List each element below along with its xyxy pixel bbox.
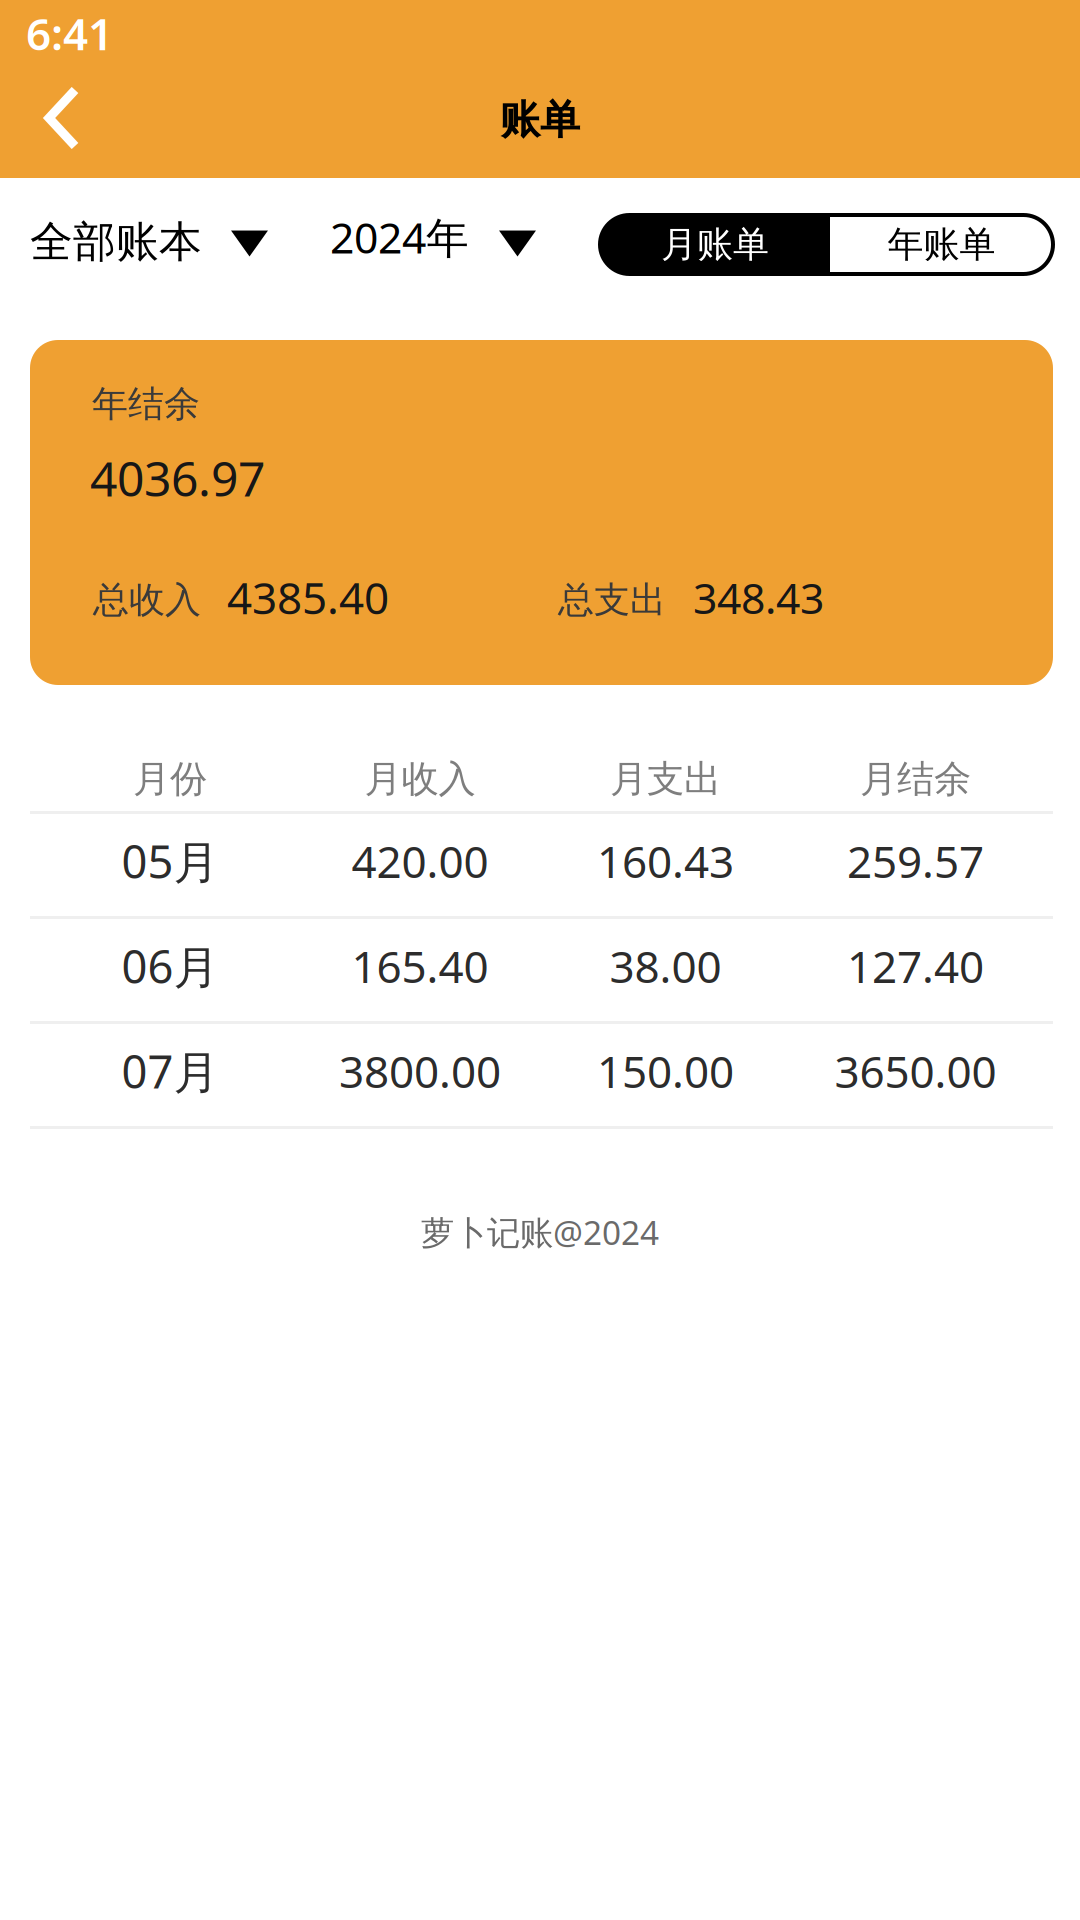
staticText: 月支出 xyxy=(610,756,721,802)
button[interactable]: 全部账本 xyxy=(0,194,286,290)
button[interactable]: Back xyxy=(0,66,120,178)
staticText: 4385.40 xyxy=(227,568,389,626)
staticText: 05月 xyxy=(121,831,218,891)
staticText: 年账单 xyxy=(887,222,995,267)
staticText: 萝卜记账@2024 xyxy=(421,1210,659,1254)
staticText: 总支出 xyxy=(558,578,666,622)
staticText: 3650.00 xyxy=(834,1042,996,1100)
staticText: 420.00 xyxy=(351,832,488,890)
staticText: 6:41 xyxy=(26,4,113,62)
staticText: 165.40 xyxy=(351,937,488,995)
staticText: 38.00 xyxy=(609,937,721,995)
staticText: 月账单 xyxy=(661,222,769,267)
staticText: 月收入 xyxy=(364,756,475,802)
staticText: 07月 xyxy=(121,1041,218,1101)
staticText: 账单 xyxy=(500,95,580,144)
staticText: 06月 xyxy=(121,936,218,996)
staticText: 160.43 xyxy=(597,832,734,890)
staticText: 月份 xyxy=(133,756,207,802)
staticText: 3800.00 xyxy=(339,1042,501,1100)
staticText: 150.00 xyxy=(597,1042,734,1100)
staticText: 348.43 xyxy=(693,569,824,626)
button[interactable]: 年账单 xyxy=(830,215,1053,274)
staticText: 月结余 xyxy=(860,756,971,802)
button[interactable]: 月账单 xyxy=(600,215,830,274)
button[interactable]: 2024年 xyxy=(308,194,554,290)
staticText: 2024年 xyxy=(330,209,469,265)
staticText: 总收入 xyxy=(93,578,201,622)
staticText: 259.57 xyxy=(847,832,984,890)
staticText: 4036.97 xyxy=(90,446,265,510)
staticText: 年结余 xyxy=(92,382,200,426)
staticText: 127.40 xyxy=(847,937,984,995)
staticText: 全部账本 xyxy=(30,216,202,268)
